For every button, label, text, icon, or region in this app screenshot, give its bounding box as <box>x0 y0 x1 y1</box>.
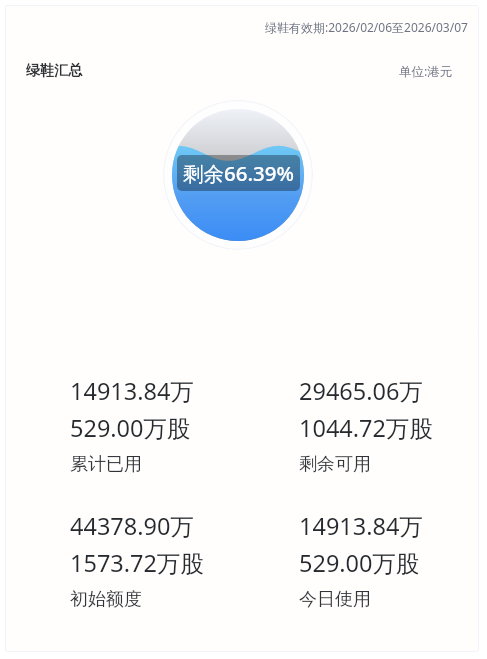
button[interactable]: 29465.06万 <box>299 375 439 476</box>
staticText: 剩余可用 <box>299 453 371 476</box>
staticText: 14913.84万 <box>299 510 423 542</box>
button[interactable]: 绿鞋剩余额度 66.39% <box>163 100 313 250</box>
staticText: 44378.90万 <box>70 510 194 542</box>
button[interactable]: 14913.84万 <box>299 510 439 611</box>
staticText: 累计已用 <box>70 453 142 476</box>
button[interactable]: 绿鞋汇总 <box>26 62 82 80</box>
staticText: 今日使用 <box>299 588 371 611</box>
staticText: 14913.84万 <box>70 375 194 407</box>
staticText: 529.00万股 <box>70 412 191 444</box>
staticText: 单位:港元 <box>399 63 453 80</box>
staticText: 绿鞋汇总 <box>26 62 82 80</box>
staticText: 1573.72万股 <box>70 547 204 579</box>
staticText: 1044.72万股 <box>299 412 433 444</box>
button[interactable]: 14913.84万 <box>70 375 210 476</box>
staticText: 初始额度 <box>70 588 142 611</box>
button[interactable]: 44378.90万 <box>70 510 210 611</box>
staticText: 绿鞋有效期:2026/02/06至2026/03/07 <box>265 19 468 35</box>
staticText: 529.00万股 <box>299 547 420 579</box>
staticText: 29465.06万 <box>299 375 423 407</box>
staticText: 剩余66.39% <box>183 159 294 187</box>
